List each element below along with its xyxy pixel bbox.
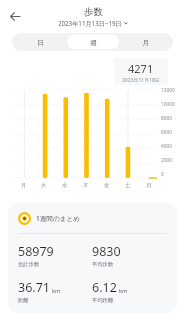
staticText: 週 bbox=[90, 38, 97, 47]
staticText: 2023年11月18日 bbox=[122, 77, 160, 82]
staticText: km bbox=[119, 287, 128, 295]
staticText: 58979 bbox=[18, 243, 54, 260]
staticText: 歩数 bbox=[84, 6, 103, 18]
staticText: 10000 bbox=[161, 101, 175, 108]
staticText: 0 bbox=[161, 171, 164, 178]
button[interactable]: 日 bbox=[14, 35, 67, 49]
staticText: 火 bbox=[41, 182, 47, 189]
staticText: 4271 bbox=[128, 61, 154, 76]
staticText: 距離 bbox=[18, 297, 29, 304]
button[interactable]: 月 bbox=[119, 35, 171, 49]
staticText: 日 bbox=[146, 182, 152, 189]
staticText: 平均歩数 bbox=[92, 261, 114, 268]
staticText: 1週間のまとめ bbox=[36, 214, 80, 223]
button[interactable]: 週 bbox=[67, 35, 119, 49]
button[interactable]: Back bbox=[6, 7, 24, 25]
staticText: 日 bbox=[37, 38, 44, 47]
staticText: 12000 bbox=[161, 87, 175, 94]
button[interactable]: 1週間のまとめ bbox=[8, 203, 177, 313]
staticText: 月 bbox=[21, 182, 27, 189]
staticText: 4000 bbox=[161, 143, 172, 150]
staticText: 36.71 bbox=[18, 279, 50, 296]
staticText: 8000 bbox=[161, 115, 172, 122]
staticText: 合計歩数 bbox=[18, 261, 40, 268]
staticText: 月 bbox=[142, 38, 149, 47]
staticText: 木 bbox=[83, 182, 89, 189]
staticText: 土 bbox=[125, 182, 131, 189]
staticText: 2023年11月13日−19日 bbox=[58, 19, 122, 27]
staticText: 水 bbox=[62, 182, 68, 189]
staticText: 平均距離 bbox=[92, 297, 114, 304]
staticText: 6000 bbox=[161, 129, 172, 136]
staticText: 2000 bbox=[161, 157, 172, 164]
staticText: 金 bbox=[104, 182, 110, 189]
button[interactable]: 2023年11月13日−19日 bbox=[58, 19, 128, 27]
staticText: km bbox=[52, 287, 61, 295]
staticText: 6.12 bbox=[92, 279, 117, 296]
staticText: 9830 bbox=[92, 243, 121, 260]
